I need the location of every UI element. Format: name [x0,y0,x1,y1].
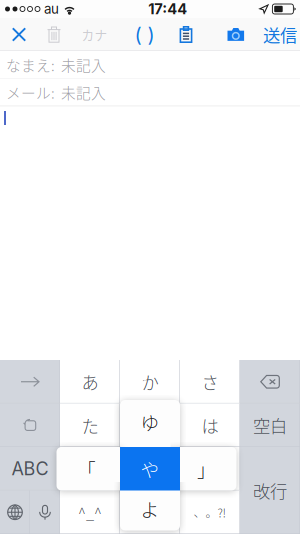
staticText: ま [81,456,98,481]
staticText: や [140,455,159,482]
button[interactable]: 言語切替 [0,490,30,534]
button[interactable]: 、。?! [180,490,240,534]
button[interactable]: カメラ [219,18,253,51]
staticText: 「 [77,455,96,482]
staticText: ^_^ [78,502,102,523]
button[interactable]: わ [120,490,180,534]
button[interactable]: ^_^ [60,490,120,534]
button[interactable]: か [120,360,180,403]
button[interactable]: 閉じる [2,18,36,51]
staticText: あ [81,369,98,394]
staticText: メール: 未記入 [6,82,106,103]
button[interactable]: は [180,403,240,447]
button[interactable]: や [120,447,180,490]
button[interactable]: 改行 [240,447,300,534]
staticText: 改行 [253,478,287,503]
button[interactable]: 空白 [240,403,300,447]
button[interactable]: 削除 [240,360,300,403]
staticText: わ [141,500,158,525]
staticText: や [141,456,158,481]
staticText: か [141,369,158,394]
staticText: た [81,413,98,438]
staticText: 、。?! [193,504,226,521]
button[interactable]: さ [180,360,240,403]
button[interactable]: ABC [0,447,60,490]
button[interactable]: 送信 [260,18,300,51]
staticText: 17:44 [148,0,187,18]
button[interactable]: あ [60,360,120,403]
button[interactable]: な [120,403,180,447]
staticText: カナ [81,25,107,44]
staticText: さ [201,369,218,394]
staticText: 送信 [263,22,297,47]
staticText: ABC [11,458,48,480]
button[interactable]: 次候補 [0,360,60,403]
staticText: 空白 [253,413,287,438]
button[interactable]: 音声入力 [30,490,60,534]
staticText: な [141,413,158,438]
button[interactable]: 括弧 [127,18,161,51]
button[interactable]: ら [180,447,240,490]
button[interactable]: 削除 [37,18,71,51]
button[interactable]: カナ入力 [77,18,111,51]
button[interactable]: 取り消し [0,403,60,447]
staticText: ら [201,456,218,481]
staticText: ゆ [140,408,159,435]
staticText: 」 [197,455,216,482]
button[interactable]: 定型文 [169,18,203,51]
button[interactable]: ま [60,447,120,490]
staticText: よ [140,495,159,522]
staticText: au [44,1,59,17]
staticText: ( ) [134,22,154,47]
staticText: は [201,413,218,438]
staticText: なまえ: 未記入 [6,54,106,75]
button[interactable]: た [60,403,120,447]
